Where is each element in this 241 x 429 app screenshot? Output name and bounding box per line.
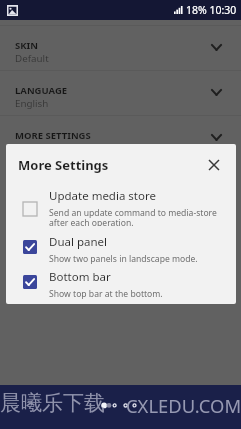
staticText: LANGUAGE — [15, 84, 68, 97]
button[interactable]: Close — [200, 151, 227, 178]
button[interactable]: Update media store — [6, 188, 236, 226]
button[interactable]: MORE SETTINGS — [0, 115, 241, 160]
staticText: Show two panels in landscape mode. — [49, 253, 198, 265]
staticText: 晨曦乐下载 — [0, 390, 105, 416]
staticText: Default — [15, 52, 49, 65]
staticText: Dual panel — [49, 234, 107, 250]
staticText: CXLEDU.COM — [126, 393, 241, 418]
button[interactable]: LANGUAGE — [0, 70, 241, 115]
staticText: More Settings — [18, 156, 109, 174]
button[interactable]: Bottom bar — [6, 268, 236, 301]
staticText: English — [15, 97, 49, 110]
staticText: Send an update command to media-store af… — [49, 207, 217, 226]
staticText: MORE SETTINGS — [15, 129, 91, 142]
button[interactable]: SKIN — [0, 25, 241, 70]
staticText: Bottom bar — [49, 269, 111, 285]
staticText: Show top bar at the bottom. — [49, 288, 163, 300]
staticText: Click to see the list — [15, 142, 100, 155]
staticText: 18% 10:30 — [186, 3, 237, 17]
staticText: SKIN — [15, 39, 38, 52]
button[interactable]: Dual panel — [6, 233, 236, 266]
staticText: Update media store — [49, 188, 156, 204]
